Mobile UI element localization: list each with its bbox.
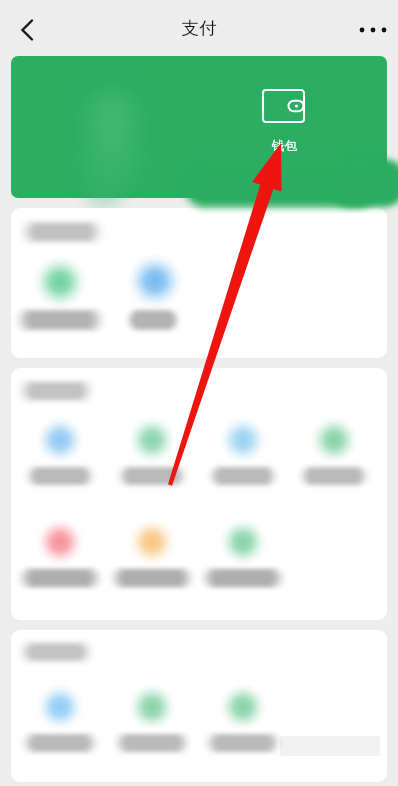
- staticText: 钱包: [272, 138, 297, 154]
- button[interactable]: 钱包: [252, 86, 316, 160]
- button[interactable]: More options: [349, 7, 393, 51]
- button[interactable]: Back: [4, 8, 48, 52]
- staticText: 支付: [0, 17, 398, 39]
